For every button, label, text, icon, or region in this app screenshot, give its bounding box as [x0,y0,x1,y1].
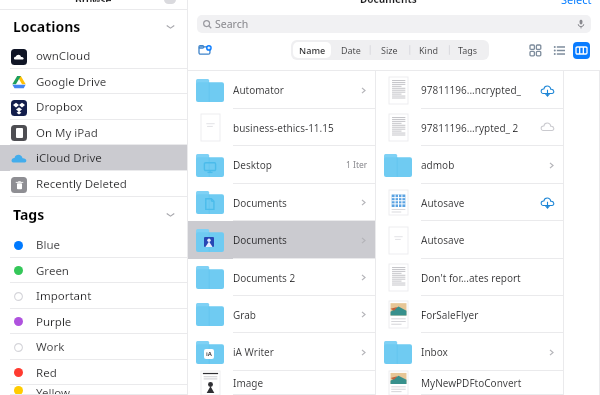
button[interactable]: Documents 2 [188,259,375,296]
button[interactable]: Blue [0,232,187,258]
staticText: admob [421,158,545,172]
button[interactable]: Select [561,0,592,7]
staticText: Size [381,44,398,56]
button[interactable]: Image [188,371,375,395]
button[interactable]: Tags [0,197,187,232]
staticText: Kind [419,44,438,56]
staticText: Important [36,288,92,304]
button[interactable]: 97811196...rypted_ 2 [376,109,563,146]
staticText: Work [36,339,65,355]
button[interactable]: Voice Search [576,19,586,29]
staticText: Documents [360,0,417,6]
staticText: Red [36,365,57,381]
button[interactable]: Date [331,42,370,58]
staticText: Recently Deleted [36,176,127,192]
button[interactable]: Automator [188,71,375,109]
staticText: Inbox [421,345,545,359]
button[interactable]: Recently Deleted [0,171,187,197]
button[interactable]: Locations [0,10,187,43]
staticText: Documents [233,196,357,210]
button[interactable]: Documents [188,184,375,221]
staticText: Grab [233,308,357,322]
staticText: Locations [13,17,81,36]
staticText: Green [36,263,69,279]
staticText: Don't for...ates report [421,271,555,285]
button[interactable]: admob [376,146,563,184]
button[interactable]: Documents [188,221,375,259]
button[interactable]: Autosave [376,221,563,259]
staticText: Search [215,17,249,31]
button[interactable]: ownCloud [0,43,187,69]
button[interactable]: Search [197,15,591,33]
button[interactable]: Kind [409,42,448,58]
staticText: On My iPad [36,125,98,141]
staticText: Documents [233,233,357,247]
button[interactable]: business-ethics-11.15 [188,109,375,146]
button[interactable]: Column view [573,42,590,59]
button[interactable]: New Folder [196,41,214,59]
staticText: 97811196...rypted_ 2 [421,121,540,135]
button[interactable]: MyNewPDFtoConvert [376,371,563,395]
staticText: Date [341,44,361,56]
staticText: 97811196...ncrypted_ [421,83,540,97]
button[interactable]: iCloud Drive [0,145,187,171]
button[interactable]: Work [0,334,187,360]
button[interactable]: Desktop [188,146,375,184]
button[interactable]: 97811196...ncrypted_ [376,71,563,109]
button[interactable]: List view [550,41,568,59]
staticText: iCloud Drive [36,150,102,166]
button[interactable]: Don't for...ates report [376,259,563,296]
button[interactable]: Tags [448,42,487,58]
staticText: iA [206,350,212,358]
button[interactable]: Account [164,0,176,4]
button[interactable]: Inbox [376,333,563,371]
button[interactable]: Important [0,283,187,309]
staticText: Browse [75,0,112,2]
staticText: 1 Item [346,159,367,171]
staticText: Select [561,0,592,7]
staticText: ownCloud [36,48,91,64]
staticText: Dropbox [36,99,83,115]
button[interactable]: Red [0,360,187,385]
button[interactable]: Icon view [526,41,544,59]
staticText: Automator [233,83,357,97]
staticText: ForSaleFlyer [421,308,555,322]
staticText: MyNewPDFtoConvert [421,376,555,390]
staticText: Desktop [233,158,346,172]
button[interactable]: On My iPad [0,120,187,145]
button[interactable]: Purple [0,309,187,334]
staticText: iA Writer [233,345,357,359]
staticText: Tags [458,44,478,56]
staticText: Image [233,376,367,390]
staticText: Purple [36,314,72,330]
staticText: business-ethics-11.15 [233,121,367,135]
button[interactable]: Dropbox [0,94,187,120]
staticText: Documents 2 [233,271,357,285]
button[interactable]: Size [370,42,409,58]
button[interactable]: Green [0,258,187,283]
button[interactable]: Google Drive [0,69,187,94]
staticText: Autosave [421,196,540,210]
staticText: Blue [36,237,61,253]
staticText: Tags [13,205,45,224]
button[interactable]: Yellow [0,385,187,395]
staticText: Google Drive [36,74,107,90]
button[interactable]: ForSaleFlyer [376,296,563,333]
button[interactable]: Name [293,42,331,58]
staticText: Yellow [36,385,71,395]
button[interactable]: Autosave [376,184,563,221]
staticText: Autosave [421,233,555,247]
staticText: Name [299,44,326,56]
button[interactable]: Grab [188,296,375,333]
button[interactable]: iA [188,333,375,371]
